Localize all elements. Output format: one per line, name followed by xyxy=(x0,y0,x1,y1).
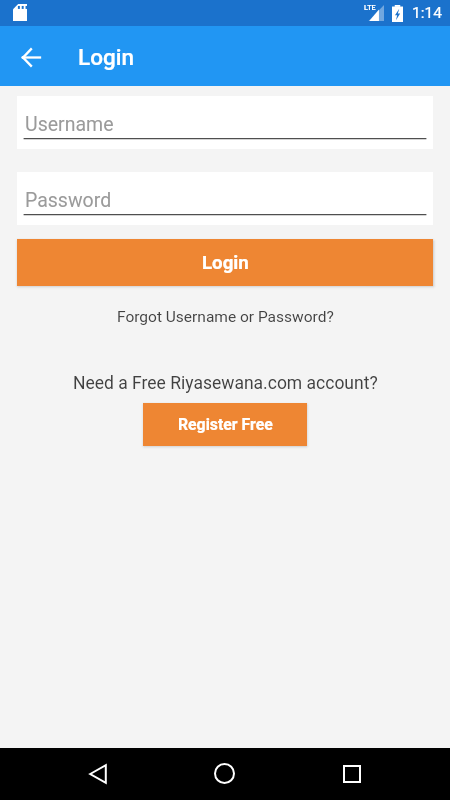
button[interactable]: Password xyxy=(17,172,433,225)
staticText: Login xyxy=(78,44,135,70)
staticText: Login xyxy=(202,252,249,274)
staticText: Need a Free Riyasewana.com account? xyxy=(73,373,378,394)
staticText: 1:14 xyxy=(412,4,442,22)
button[interactable]: Login xyxy=(17,239,433,286)
button[interactable]: Back xyxy=(10,26,52,86)
button[interactable]: Forgot Username or Password? xyxy=(107,305,344,329)
staticText: Password xyxy=(25,189,112,212)
button[interactable]: Back xyxy=(89,764,107,784)
button[interactable]: Username xyxy=(17,96,433,149)
staticText: Username xyxy=(25,113,114,136)
staticText: LTE xyxy=(364,3,376,11)
button[interactable]: Recent apps xyxy=(343,765,361,783)
staticText: Register Free xyxy=(178,415,273,434)
button[interactable]: Home xyxy=(214,763,235,784)
staticText: Forgot Username or Password? xyxy=(117,308,334,326)
button[interactable]: Register Free xyxy=(143,403,307,446)
